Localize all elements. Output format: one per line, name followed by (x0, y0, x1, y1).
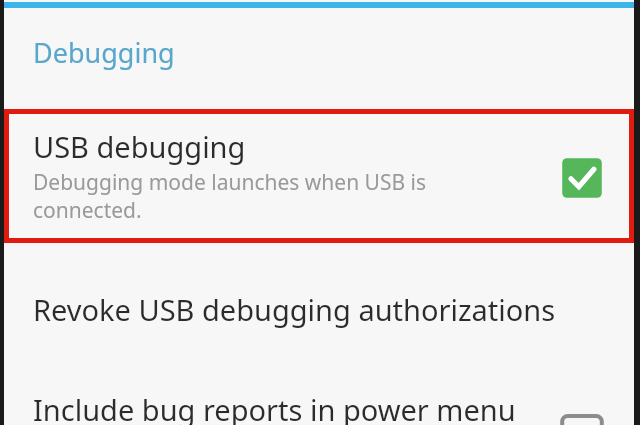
button[interactable]: USB debugging enabled (560, 156, 604, 200)
button[interactable]: Include bug reports in power menu (4, 362, 634, 425)
button[interactable]: Revoke USB debugging authorizations (4, 262, 634, 354)
button[interactable]: Include bug reports in power menu toggle (560, 414, 604, 425)
staticText: Include bug reports in power menu (33, 390, 516, 425)
button[interactable]: USB debugging (4, 111, 634, 241)
staticText: Debugging (33, 34, 175, 71)
staticText: Debugging mode launches when USB is conn… (33, 168, 493, 232)
button[interactable]: Debugging (4, 20, 634, 90)
staticText: USB debugging (33, 127, 246, 166)
staticText: Revoke USB debugging authorizations (33, 290, 556, 329)
